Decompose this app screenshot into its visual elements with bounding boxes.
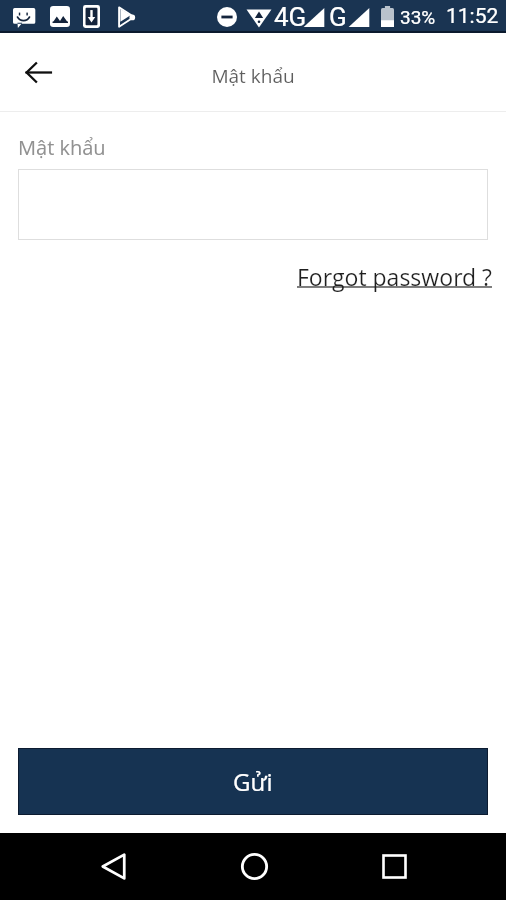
- button[interactable]: Home: [229, 841, 279, 891]
- button[interactable]: Gửi: [18, 748, 488, 815]
- staticText: Mật khẩu: [211, 63, 295, 89]
- button[interactable]: Recent apps: [369, 841, 419, 891]
- staticText: 33%: [400, 6, 436, 28]
- staticText: Mật khẩu: [18, 134, 106, 161]
- staticText: 4G: [274, 2, 307, 32]
- button[interactable]: Forgot password ?: [297, 261, 492, 292]
- button[interactable]: Back: [88, 841, 138, 891]
- staticText: 11:52: [446, 4, 499, 29]
- button[interactable]: [18, 169, 488, 240]
- button[interactable]: Back: [12, 46, 64, 98]
- staticText: Gửi: [233, 765, 273, 798]
- staticText: G: [329, 2, 347, 32]
